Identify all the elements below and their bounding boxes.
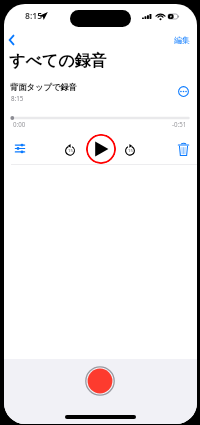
staticText: -0:51: [172, 120, 187, 128]
button[interactable]: 編集: [171, 32, 192, 48]
staticText: 背面タップで録音: [10, 82, 78, 92]
staticText: 編集: [174, 35, 190, 45]
staticText: 0:00: [13, 120, 26, 128]
button[interactable]: Play: [86, 134, 116, 164]
staticText: 8:15: [25, 10, 43, 22]
button[interactable]: Back: [4, 31, 20, 49]
button[interactable]: Playback settings: [12, 140, 28, 156]
button[interactable]: Skip back 15 seconds: [62, 142, 78, 158]
staticText: 8:15: [11, 94, 24, 102]
button[interactable]: More options: [175, 83, 191, 99]
button[interactable]: Record: [84, 365, 116, 397]
button[interactable]: Delete: [174, 140, 192, 158]
button[interactable]: Skip forward 15 seconds: [122, 142, 138, 158]
staticText: すべての録音: [9, 51, 107, 71]
staticText: 15: [128, 148, 133, 154]
staticText: 15: [68, 148, 73, 154]
